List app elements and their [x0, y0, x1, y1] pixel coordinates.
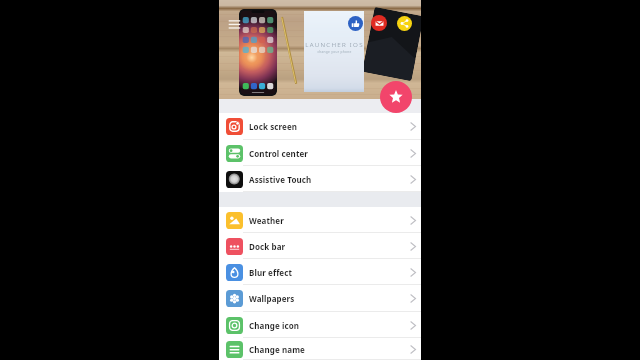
staticText: change your phone	[317, 50, 352, 54]
button[interactable]: Email	[371, 15, 387, 31]
staticText: Control center	[249, 148, 309, 159]
button[interactable]: Lock screen	[219, 113, 421, 140]
button[interactable]: Favorite	[380, 81, 412, 113]
button[interactable]: Dock bar	[219, 233, 421, 259]
button[interactable]: Share on Facebook	[348, 16, 363, 31]
staticText: LAUNCHER IOS	[305, 40, 364, 48]
staticText: Wallpapers	[249, 293, 295, 304]
button[interactable]: Menu	[227, 17, 242, 31]
button[interactable]: Weather	[219, 207, 421, 233]
button[interactable]: Wallpapers	[219, 285, 421, 312]
staticText: Blur effect	[249, 267, 293, 278]
button[interactable]: Assistive Touch	[219, 166, 421, 192]
staticText: Weather	[249, 215, 284, 226]
button[interactable]: Change name	[219, 338, 421, 360]
button[interactable]: Change icon	[219, 312, 421, 338]
button[interactable]: Share	[397, 16, 412, 31]
staticText: Lock screen	[249, 121, 298, 132]
button[interactable]: Blur effect	[219, 259, 421, 285]
staticText: Change name	[249, 344, 305, 355]
staticText: Change icon	[249, 320, 300, 331]
staticText: Dock bar	[249, 241, 286, 252]
button[interactable]: Control center	[219, 140, 421, 166]
staticText: Assistive Touch	[249, 174, 312, 185]
